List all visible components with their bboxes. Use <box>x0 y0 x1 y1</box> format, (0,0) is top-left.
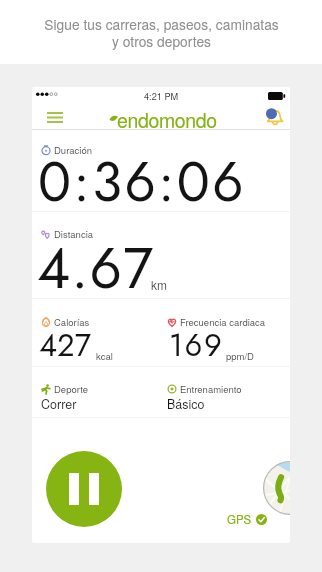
staticText: 0:36:06 <box>38 142 246 221</box>
staticText: kcal <box>96 349 113 363</box>
staticText: Sigue tus carreras, paseos, caminatas y … <box>44 14 279 51</box>
staticText: Distancia <box>54 227 94 241</box>
staticText: Deporte <box>54 382 88 396</box>
button[interactable]: Menu <box>35 106 75 129</box>
staticText: 4:21 PM <box>144 89 179 102</box>
staticText: Correr <box>41 395 77 413</box>
staticText: endomondo <box>117 106 217 129</box>
button[interactable]: GPS <box>227 511 267 527</box>
staticText: ppm/D <box>226 349 254 363</box>
staticText: Frecuencia cardiaca <box>180 315 266 329</box>
button[interactable]: Pause <box>46 451 122 527</box>
staticText: Básico <box>167 395 205 413</box>
staticText: Calorías <box>54 315 90 329</box>
staticText: GPS <box>227 511 252 527</box>
staticText: Entrenamiento <box>180 382 242 396</box>
staticText: Duración <box>54 143 92 157</box>
button[interactable]: Notifications <box>261 106 287 129</box>
staticText: 427 <box>39 323 91 368</box>
staticText: km <box>151 276 167 293</box>
staticText: 169 <box>169 323 224 368</box>
staticText: 4.67 <box>37 227 155 309</box>
